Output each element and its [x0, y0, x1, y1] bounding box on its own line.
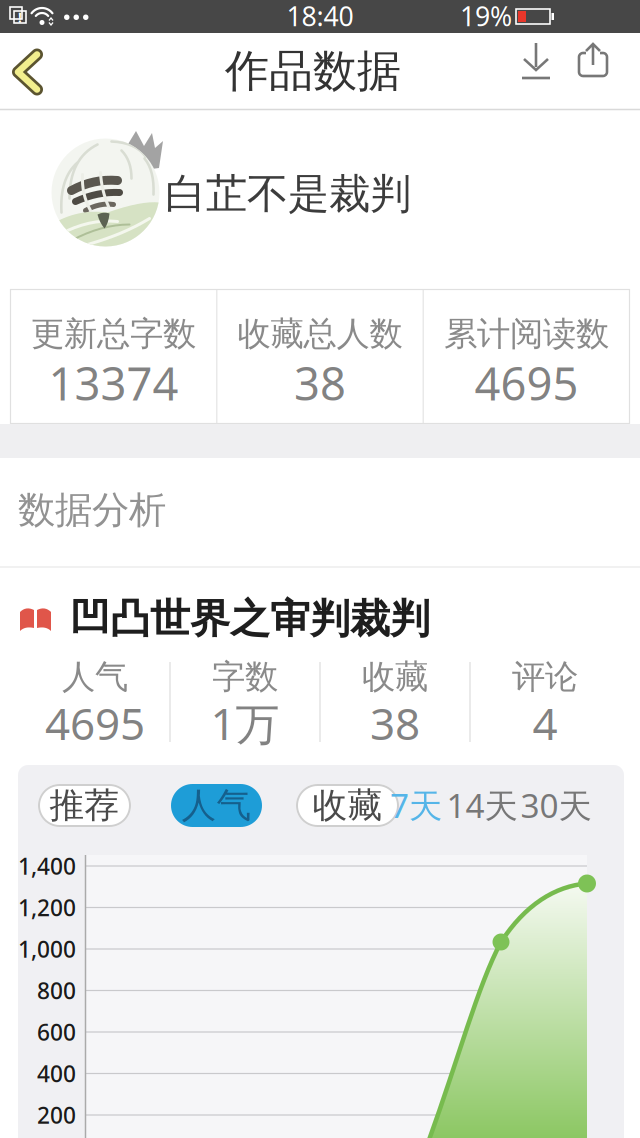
- staticText: 白芷不是裁判: [165, 169, 411, 219]
- staticText: 18:40: [286, 0, 353, 34]
- button[interactable]: 分享: [0, 0, 640, 1138]
- button[interactable]: 返回: [0, 0, 640, 1138]
- staticText: 评论: [512, 656, 578, 697]
- staticText: 收藏: [312, 784, 382, 827]
- button[interactable]: 14天: [0, 0, 640, 1138]
- staticText: 收藏总人数: [237, 313, 402, 354]
- staticText: 4695: [45, 694, 145, 752]
- button[interactable]: 30天: [0, 0, 640, 1138]
- staticText: 1,000: [18, 934, 76, 964]
- staticText: 38: [370, 694, 420, 752]
- staticText: 数据分析: [18, 487, 166, 533]
- staticText: 200: [37, 1100, 76, 1130]
- button[interactable]: 凹凸世界之审判裁判: [0, 0, 640, 1138]
- staticText: 作品数据: [225, 44, 401, 98]
- staticText: 推荐: [49, 784, 119, 827]
- staticText: 13374: [48, 353, 178, 413]
- staticText: 收藏: [362, 656, 428, 697]
- staticText: 凹凸世界之审判裁判: [70, 594, 430, 643]
- staticText: 人气: [62, 656, 128, 697]
- button[interactable]: 推荐: [0, 0, 640, 1138]
- staticText: 400: [37, 1058, 76, 1088]
- staticText: 字数: [212, 656, 278, 697]
- staticText: 600: [37, 1017, 76, 1047]
- staticText: 30天: [520, 783, 591, 827]
- button[interactable]: 人气: [0, 0, 640, 1138]
- staticText: 1,400: [18, 851, 76, 881]
- staticText: 19%: [460, 0, 512, 34]
- staticText: 4: [532, 694, 557, 752]
- button[interactable]: 7天: [0, 0, 640, 1138]
- staticText: 14天: [446, 783, 517, 827]
- staticText: 累计阅读数: [444, 313, 609, 354]
- staticText: 800: [37, 975, 76, 1005]
- staticText: 1万: [210, 694, 279, 752]
- staticText: 7天: [390, 783, 442, 827]
- staticText: 1,200: [18, 892, 76, 922]
- staticText: 更新总字数: [31, 313, 196, 354]
- staticText: !: [18, 9, 22, 26]
- button[interactable]: 收藏: [0, 0, 640, 1138]
- button[interactable]: 下载: [0, 0, 640, 1138]
- staticText: 人气: [181, 784, 251, 827]
- staticText: 4695: [474, 353, 578, 413]
- staticText: 38: [294, 353, 346, 413]
